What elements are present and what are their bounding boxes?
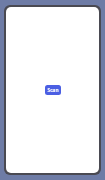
staticText: Scan bbox=[47, 87, 59, 94]
button[interactable]: Scan bbox=[45, 85, 61, 95]
